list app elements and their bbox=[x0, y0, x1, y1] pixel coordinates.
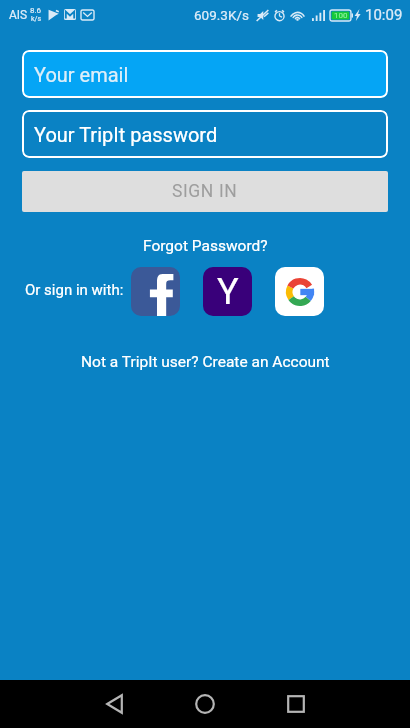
staticText: 100 bbox=[334, 11, 348, 20]
staticText: Y bbox=[217, 271, 239, 313]
staticText: 8.6 bbox=[30, 6, 42, 15]
button[interactable]: SIGN IN bbox=[22, 171, 388, 212]
button[interactable]: Forgot Password? bbox=[133, 232, 278, 260]
button[interactable]: Google sign in bbox=[275, 267, 324, 316]
button[interactable]: Back bbox=[90, 680, 138, 728]
button[interactable]: Your TripIt password bbox=[22, 110, 388, 158]
button[interactable]: Recents bbox=[272, 680, 320, 728]
staticText: Your TripIt password bbox=[34, 123, 218, 146]
staticText: 609.3K/s bbox=[194, 7, 249, 23]
button[interactable]: Home bbox=[181, 680, 229, 728]
staticText: Forgot Password? bbox=[143, 237, 268, 255]
staticText: Your email bbox=[34, 63, 129, 86]
button[interactable]: Not a TripIt user? Create an Account bbox=[71, 348, 340, 376]
staticText: k/s bbox=[31, 15, 42, 23]
staticText: SIGN IN bbox=[172, 181, 238, 202]
staticText: 10:09 bbox=[365, 6, 403, 24]
staticText: Or sign in with: bbox=[25, 281, 124, 299]
button[interactable]: Yahoo sign in bbox=[203, 267, 252, 316]
staticText: AIS bbox=[9, 8, 28, 22]
staticText: Not a TripIt user? Create an Account bbox=[81, 353, 330, 371]
button[interactable]: Facebook sign in bbox=[131, 267, 180, 316]
button[interactable]: Your email bbox=[22, 50, 388, 98]
